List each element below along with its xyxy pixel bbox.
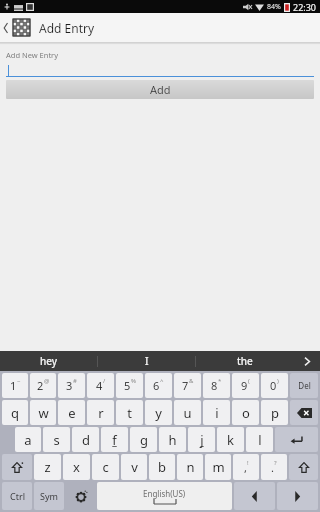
staticText: c	[102, 458, 109, 476]
staticText: ?	[274, 459, 277, 467]
button[interactable]: o	[232, 400, 259, 425]
button[interactable]: hey	[0, 351, 98, 371]
button[interactable]: i	[203, 400, 230, 425]
button[interactable]: 4	[87, 373, 114, 398]
staticText: the	[237, 354, 253, 368]
staticText: w	[38, 404, 49, 422]
button[interactable]: g	[130, 427, 157, 452]
staticText: 2	[37, 378, 44, 393]
button[interactable]: 0	[261, 373, 288, 398]
staticText: 22:30	[293, 1, 317, 13]
button[interactable]: m	[205, 454, 231, 480]
staticText: 6	[153, 378, 160, 393]
staticText: a	[24, 431, 32, 449]
button[interactable]: n	[177, 454, 203, 480]
button[interactable]: v	[121, 454, 147, 480]
button[interactable]: p	[261, 400, 288, 425]
button[interactable]: 1	[2, 373, 28, 398]
staticText: .	[271, 460, 274, 475]
button[interactable]: s	[43, 427, 70, 452]
button[interactable]: 6	[145, 373, 172, 398]
staticText: Del	[298, 380, 311, 391]
button[interactable]: More suggestions	[294, 351, 320, 371]
staticText: 7	[182, 378, 189, 393]
button[interactable]: Delete	[290, 373, 318, 398]
staticText: y	[155, 404, 162, 422]
staticText: (	[248, 377, 250, 385]
button[interactable]: d	[72, 427, 99, 452]
staticText: 8	[211, 378, 218, 393]
button[interactable]: r	[87, 400, 114, 425]
button[interactable]: Enter	[275, 427, 318, 452]
button[interactable]: 3	[58, 373, 85, 398]
button[interactable]: u	[174, 400, 201, 425]
staticText: %	[131, 377, 136, 385]
button[interactable]: Space	[97, 482, 232, 510]
button[interactable]: a	[15, 427, 41, 452]
button[interactable]: b	[149, 454, 175, 480]
staticText: /	[103, 377, 106, 385]
button[interactable]: I	[98, 351, 196, 371]
button[interactable]: 8	[203, 373, 230, 398]
button[interactable]: 5	[116, 373, 143, 398]
button[interactable]: z	[34, 454, 61, 480]
staticText: x	[73, 458, 80, 476]
button[interactable]: .	[261, 454, 287, 480]
button[interactable]: t	[116, 400, 143, 425]
button[interactable]: Backspace	[290, 400, 318, 425]
staticText: r	[98, 404, 104, 422]
staticText: p	[271, 404, 279, 422]
staticText: k	[227, 431, 234, 449]
staticText: u	[183, 404, 192, 422]
button[interactable]: c	[92, 454, 119, 480]
staticText: !	[247, 459, 249, 467]
staticText: Add	[150, 82, 171, 97]
staticText: @	[44, 377, 50, 385]
button[interactable]: 9	[232, 373, 259, 398]
button[interactable]: y	[145, 400, 172, 425]
button[interactable]: ,	[233, 454, 259, 480]
staticText: ~	[17, 377, 21, 385]
button[interactable]: k	[217, 427, 244, 452]
button[interactable]: Shift	[289, 454, 318, 480]
button[interactable]: w	[30, 400, 56, 425]
button[interactable]: q	[2, 400, 28, 425]
button[interactable]: f	[101, 427, 128, 452]
staticText: 5	[124, 378, 131, 393]
staticText: n	[186, 458, 195, 476]
button[interactable]: 2	[30, 373, 56, 398]
staticText: z	[44, 458, 51, 476]
staticText: English(US)	[143, 488, 186, 499]
staticText: g	[140, 431, 148, 449]
staticText: 3	[66, 378, 73, 393]
button[interactable]: the	[196, 351, 294, 371]
button[interactable]: l	[246, 427, 273, 452]
button[interactable]: Add	[6, 80, 314, 99]
button[interactable]: Keyboard settings	[66, 482, 95, 510]
button[interactable]	[6, 63, 314, 77]
staticText: *	[218, 377, 222, 385]
button[interactable]: Shift	[2, 454, 32, 480]
staticText: l	[258, 431, 262, 449]
staticText: 4	[96, 378, 103, 393]
staticText: 84%	[267, 2, 281, 12]
button[interactable]	[12, 18, 31, 37]
button[interactable]: h	[159, 427, 186, 452]
staticText: ^	[160, 377, 164, 385]
button[interactable]: j	[188, 427, 215, 452]
staticText: i	[215, 404, 219, 422]
staticText: I	[145, 354, 149, 368]
button[interactable]: e	[58, 400, 85, 425]
button[interactable]: Cursor right	[277, 482, 318, 510]
button[interactable]: x	[63, 454, 90, 480]
staticText: h	[168, 431, 177, 449]
button[interactable]: Sym	[34, 482, 64, 510]
button[interactable]: Back	[0, 13, 12, 42]
staticText: q	[11, 404, 19, 422]
button[interactable]: Cursor left	[234, 482, 275, 510]
button[interactable]: Ctrl	[2, 482, 32, 510]
button[interactable]: 7	[174, 373, 201, 398]
staticText: m	[212, 458, 225, 476]
staticText: Add Entry	[39, 20, 95, 36]
staticText: #	[73, 377, 77, 385]
